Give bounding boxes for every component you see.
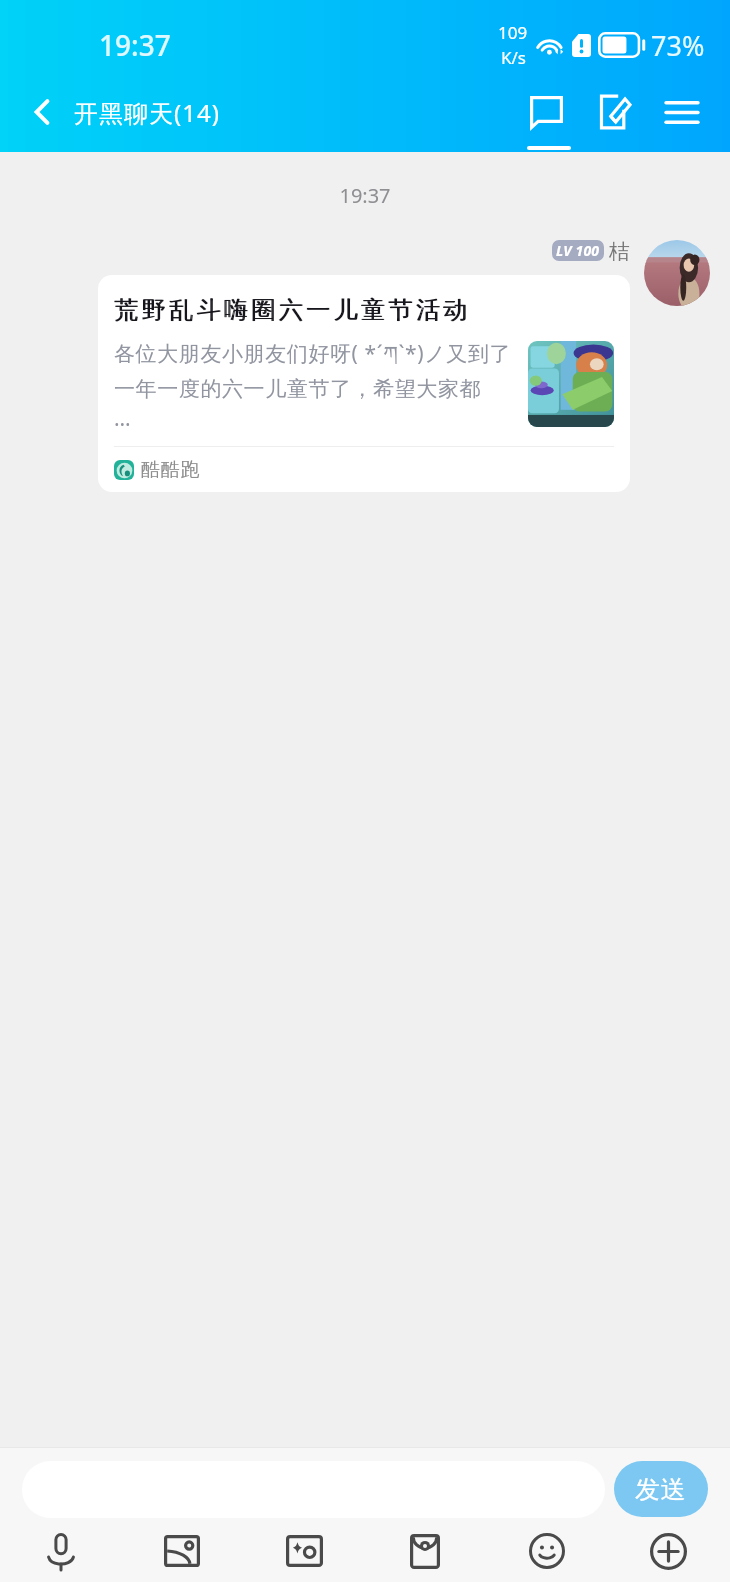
staticText: 一年一度的六一儿童节了，希望大家都 — [114, 376, 482, 402]
button[interactable]: Sticker — [257, 1525, 351, 1577]
button[interactable]: Chat — [512, 81, 580, 143]
button[interactable]: Voice message — [14, 1525, 108, 1577]
button[interactable]: Back — [16, 86, 68, 138]
button[interactable]: Compose — [580, 81, 648, 143]
staticText: LV 100 — [556, 241, 600, 260]
button[interactable]: More — [621, 1525, 715, 1577]
staticText: 19:37 — [0, 182, 730, 209]
staticText: 发送 — [635, 1474, 687, 1505]
staticText: 酷酷跑 — [141, 458, 201, 482]
staticText: 桔 — [609, 239, 630, 261]
button[interactable]: Red packet — [378, 1525, 472, 1577]
staticText: 荒野乱斗嗨圈六一儿童节活动 — [114, 295, 471, 325]
staticText: 73% — [651, 27, 705, 64]
button[interactable]: Photo — [135, 1525, 229, 1577]
staticText: 开黑聊天(14) — [74, 96, 220, 129]
staticText: … — [114, 404, 132, 433]
button[interactable]: 发送 — [614, 1461, 708, 1517]
button[interactable]: Avatar — [644, 240, 710, 306]
button[interactable]: 荒野乱斗嗨圈六一儿童节活动 — [98, 275, 630, 492]
staticText: 19:37 — [99, 26, 171, 64]
button[interactable]: Emoji — [500, 1525, 594, 1577]
staticText: K/s — [501, 46, 526, 69]
button[interactable]: Menu — [648, 81, 716, 143]
staticText: 各位大朋友小朋友们好呀( *ˊཀˋ*)ノ又到了 — [114, 330, 512, 364]
staticText: 荒野乱斗嗨圈六一儿童节活动 — [115, 295, 472, 325]
staticText: 109 — [498, 21, 528, 44]
